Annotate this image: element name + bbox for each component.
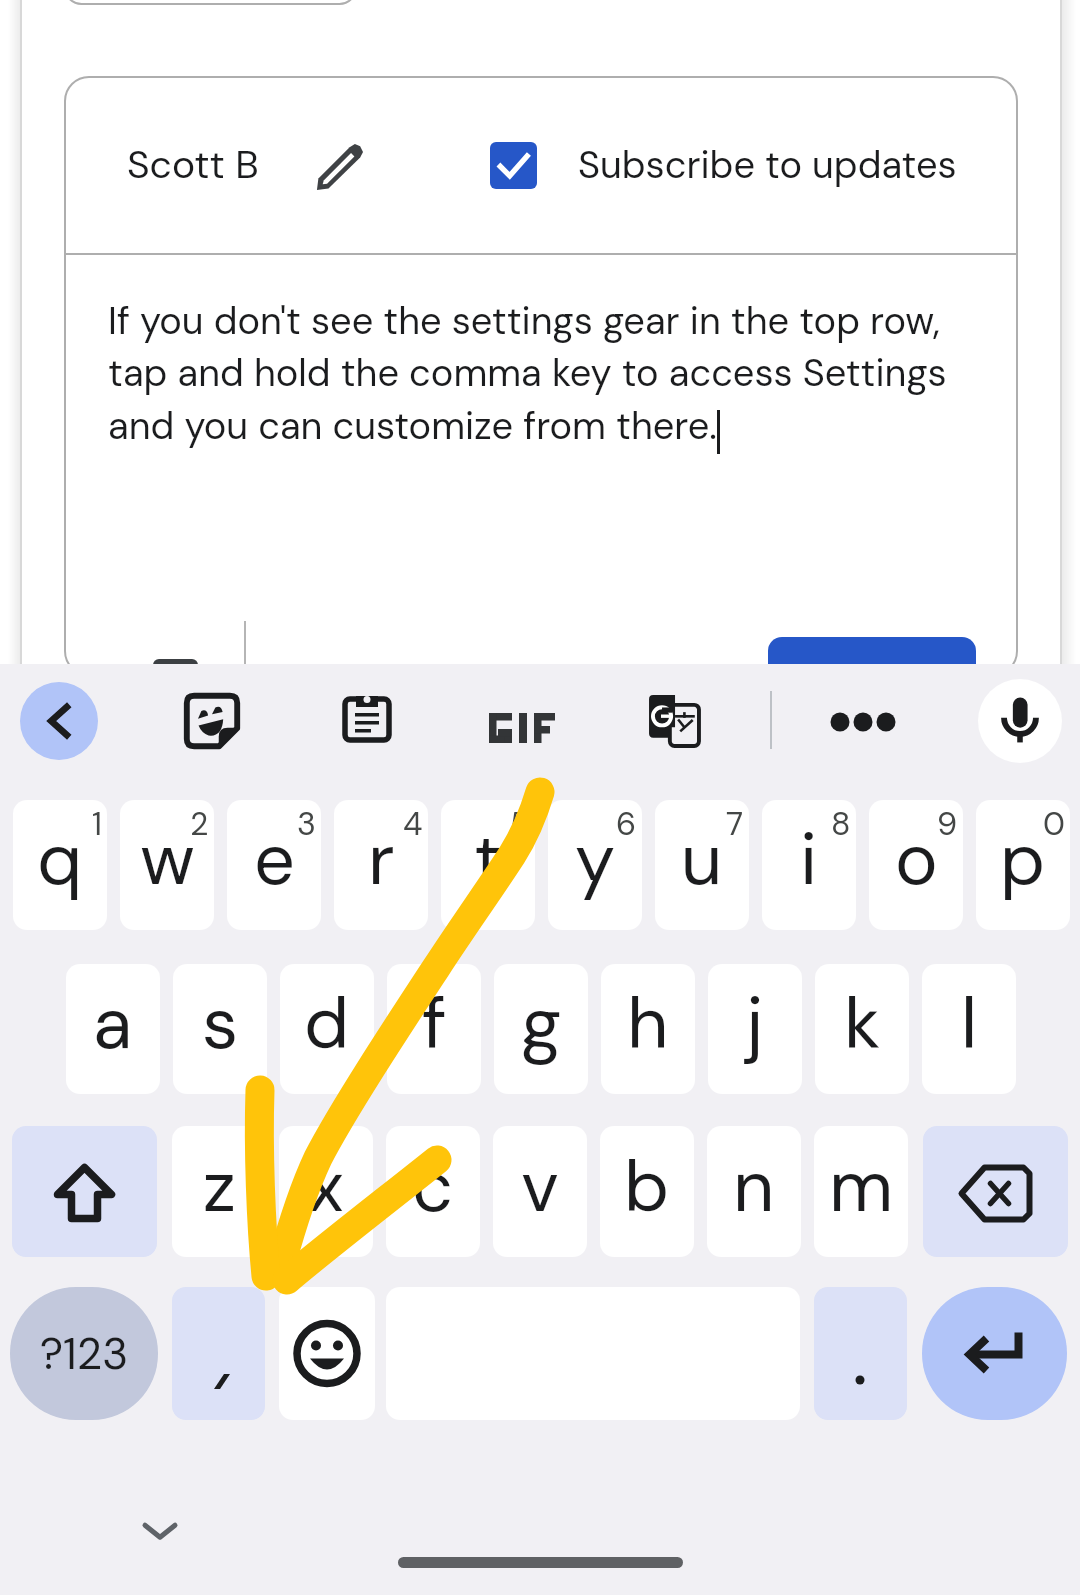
button[interactable]: Stickers: [184, 693, 240, 749]
button[interactable]: u: [655, 800, 749, 930]
staticText: Scott B: [127, 139, 259, 190]
staticText: h: [627, 977, 669, 1071]
button[interactable]: v: [493, 1126, 587, 1257]
button[interactable]: t: [441, 800, 535, 930]
button[interactable]: z: [172, 1126, 266, 1257]
button[interactable]: ?123: [10, 1287, 158, 1420]
button[interactable]: e: [227, 800, 321, 930]
button[interactable]: Period: [814, 1287, 907, 1420]
staticText: 4: [403, 803, 423, 845]
button[interactable]: i: [762, 800, 856, 930]
button[interactable]: q: [13, 800, 107, 930]
button[interactable]: Back: [20, 682, 98, 760]
staticText: p: [1000, 813, 1046, 907]
staticText: 8: [831, 803, 851, 845]
button[interactable]: f: [387, 964, 481, 1094]
button[interactable]: Subscribe to updates checkbox, checked: [490, 142, 537, 189]
button[interactable]: x: [279, 1126, 373, 1257]
staticText: t: [474, 813, 503, 907]
staticText: d: [304, 977, 350, 1071]
button[interactable]: o: [869, 800, 963, 930]
staticText: o: [895, 813, 938, 907]
button[interactable]: d: [280, 964, 374, 1094]
staticText: v: [521, 1140, 559, 1234]
staticText: Subscribe to updates: [578, 140, 957, 189]
staticText: If you don't see the settings gear in th…: [108, 296, 1008, 451]
staticText: k: [844, 977, 881, 1071]
button[interactable]: Shift: [12, 1126, 157, 1257]
button[interactable]: Emoji: [279, 1287, 375, 1420]
button[interactable]: h: [601, 964, 695, 1094]
staticText: i: [800, 813, 818, 907]
staticText: j: [746, 977, 764, 1071]
button[interactable]: GIF: [485, 696, 559, 736]
button[interactable]: b: [600, 1126, 694, 1257]
button[interactable]: k: [815, 964, 909, 1094]
button[interactable]: Enter: [922, 1287, 1067, 1420]
button[interactable]: Hide keyboard: [130, 1500, 190, 1560]
button[interactable]: p: [976, 800, 1070, 930]
staticText: e: [254, 813, 295, 907]
button[interactable]: Edit name: [316, 143, 364, 191]
staticText: s: [202, 977, 239, 1071]
button[interactable]: c: [386, 1126, 480, 1257]
staticText: x: [308, 1140, 344, 1234]
button[interactable]: Attach: [153, 659, 198, 689]
button[interactable]: r: [334, 800, 428, 930]
button[interactable]: a: [66, 964, 160, 1094]
button[interactable]: Voice input: [978, 679, 1062, 763]
button[interactable]: w: [120, 800, 214, 930]
staticText: b: [624, 1140, 670, 1234]
staticText: g: [521, 977, 562, 1071]
button[interactable]: Clipboard: [342, 693, 392, 743]
staticText: w: [140, 813, 195, 907]
staticText: f: [422, 977, 447, 1071]
staticText: 0: [1043, 803, 1065, 845]
button[interactable]: m: [814, 1126, 908, 1257]
button[interactable]: l: [922, 964, 1016, 1094]
staticText: 3: [297, 803, 316, 845]
staticText: m: [829, 1140, 894, 1234]
staticText: y: [575, 813, 616, 907]
staticText: 1: [92, 803, 102, 845]
staticText: c: [412, 1140, 454, 1234]
staticText: r: [368, 813, 395, 907]
staticText: 7: [726, 803, 744, 845]
staticText: u: [681, 813, 723, 907]
button[interactable]: s: [173, 964, 267, 1094]
staticText: l: [961, 977, 978, 1071]
staticText: q: [37, 813, 83, 907]
staticText: z: [203, 1140, 236, 1234]
staticText: 9: [937, 803, 958, 845]
button[interactable]: Post: [768, 637, 976, 697]
button[interactable]: g: [494, 964, 588, 1094]
staticText: 2: [190, 803, 209, 845]
staticText: 5: [510, 803, 530, 845]
button[interactable]: Translate: [648, 695, 700, 747]
staticText: ?123: [40, 1325, 129, 1382]
button[interactable]: Backspace: [923, 1126, 1068, 1257]
button[interactable]: Comma: [172, 1287, 265, 1420]
staticText: a: [93, 977, 133, 1071]
button[interactable]: n: [707, 1126, 801, 1257]
button[interactable]: j: [708, 964, 802, 1094]
button[interactable]: y: [548, 800, 642, 930]
staticText: 6: [616, 803, 637, 845]
button[interactable]: More options: [830, 694, 896, 750]
staticText: n: [733, 1140, 775, 1234]
